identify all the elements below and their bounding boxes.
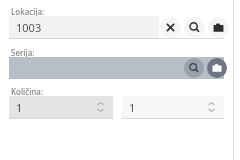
staticText: Serija: bbox=[11, 47, 35, 58]
button[interactable]: 1003 bbox=[9, 16, 159, 38]
staticText: 1 bbox=[129, 100, 136, 115]
button[interactable]: 1 bbox=[122, 96, 224, 118]
button[interactable]: Quantity total bbox=[207, 100, 216, 114]
button[interactable] bbox=[9, 57, 224, 79]
button[interactable]: Clear bbox=[160, 17, 181, 38]
staticText: Lokacija: bbox=[11, 6, 45, 17]
staticText: 1 bbox=[16, 100, 23, 115]
button[interactable]: Scan serial with camera bbox=[207, 58, 227, 78]
button[interactable]: Scan with camera bbox=[208, 17, 229, 38]
button[interactable]: Quantity bbox=[96, 100, 105, 114]
button[interactable]: 1 bbox=[9, 96, 113, 118]
button[interactable]: Search serial bbox=[184, 58, 204, 78]
button[interactable]: Search location bbox=[184, 17, 205, 38]
staticText: 1003 bbox=[16, 20, 42, 35]
staticText: Količina: bbox=[11, 86, 44, 97]
